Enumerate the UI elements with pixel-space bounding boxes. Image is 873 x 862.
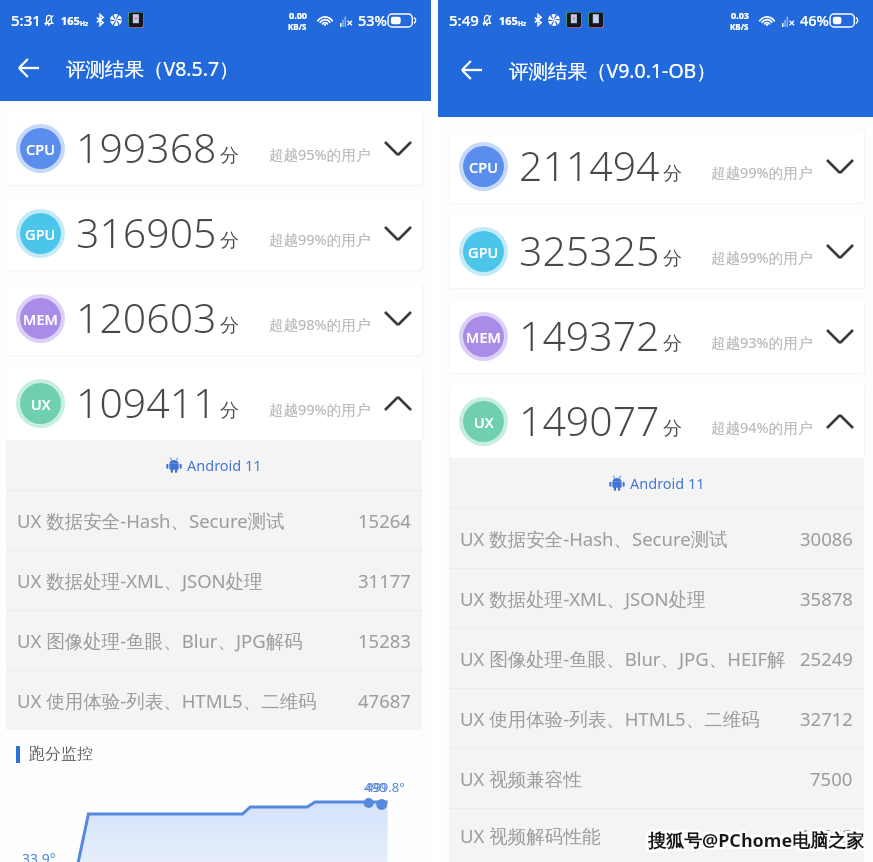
button[interactable]: UX 视频解码性能 [449, 809, 864, 862]
staticText: UX 图像处理-鱼眼、Blur、JPG解码 [17, 628, 303, 653]
staticText: 149372 [519, 307, 660, 363]
staticText: UX 数据安全-Hash、Secure测试 [17, 508, 285, 533]
button[interactable]: GPU [449, 215, 864, 288]
staticText: 17653 [800, 823, 853, 848]
staticText: Android 11 [187, 455, 262, 475]
button[interactable]: Back [8, 48, 48, 88]
staticText: 15264 [358, 508, 411, 533]
staticText: 超越99%的用户 [711, 162, 813, 182]
staticText: 搜狐号@PChome电脑之家 [646, 827, 863, 852]
staticText: 分 [220, 399, 239, 423]
staticText: UX 数据处理-XML、JSON处理 [460, 586, 706, 611]
staticText: UX [474, 412, 494, 432]
staticText: 30086 [800, 526, 853, 551]
staticText: CPU [26, 139, 56, 159]
staticText: 搜狐号@PChome电脑之家 [650, 828, 867, 853]
staticText: 搜狐号@PChome电脑之家 [648, 828, 865, 853]
staticText: 超越95%的用户 [269, 144, 371, 164]
staticText: UX 使用体验-列表、HTML5、二维码 [17, 688, 317, 713]
staticText: GPU [468, 242, 499, 262]
staticText: 评测结果（V9.0.1-OB） [509, 57, 716, 84]
staticText: 149077 [519, 392, 660, 448]
staticText: GPU [25, 224, 56, 244]
staticText: UX 使用体验-列表、HTML5、二维码 [460, 706, 760, 731]
staticText: 超越98%的用户 [269, 314, 371, 334]
staticText: CPU [469, 157, 499, 177]
staticText: 490 [364, 778, 387, 796]
staticText: Hz [80, 19, 89, 28]
staticText: UX 视频解码性能 [460, 823, 601, 848]
staticText: 搜狐号@PChome电脑之家 [650, 827, 867, 852]
button[interactable]: MEM [449, 300, 864, 373]
button[interactable]: UX 使用体验-列表、HTML5、二维码 [6, 671, 422, 730]
button[interactable]: UX [6, 367, 422, 440]
staticText: 分 [220, 229, 239, 253]
staticText: 32712 [800, 706, 853, 731]
staticText: 搜狐号@PChome电脑之家 [650, 830, 867, 855]
staticText: 0.00 [289, 9, 307, 21]
staticText: 搜狐号@PChome电脑之家 [649, 829, 866, 854]
staticText: 搜狐号@PChome电脑之家 [646, 829, 863, 854]
staticText: UX 数据安全-Hash、Secure测试 [460, 526, 728, 551]
staticText: 搜狐号@PChome电脑之家 [647, 828, 864, 853]
staticText: 分 [663, 247, 682, 271]
staticText: MEM [466, 327, 501, 347]
staticText: 分 [220, 144, 239, 168]
staticText: 搜狐号@PChome电脑之家 [647, 829, 864, 854]
staticText: MEM [23, 309, 58, 329]
staticText: 搜狐号@PChome电脑之家 [647, 830, 864, 855]
staticText: 499.8° [366, 778, 405, 796]
staticText: 搜狐号@PChome电脑之家 [648, 829, 865, 854]
staticText: 搜狐号@PChome电脑之家 [649, 827, 866, 852]
staticText: 搜狐号@PChome电脑之家 [646, 830, 863, 855]
staticText: 分 [220, 314, 239, 338]
staticText: 超越94%的用户 [711, 417, 813, 437]
button[interactable]: UX 数据安全-Hash、Secure测试 [449, 509, 864, 568]
button[interactable]: UX [449, 385, 864, 458]
button[interactable]: UX 数据安全-Hash、Secure测试 [6, 491, 422, 550]
staticText: 0.03 [731, 9, 749, 21]
button[interactable]: GPU [6, 197, 422, 270]
button[interactable]: CPU [6, 112, 422, 185]
staticText: 分 [663, 332, 682, 356]
staticText: 47687 [358, 688, 411, 713]
button[interactable]: CPU [449, 130, 864, 203]
button[interactable]: MEM [6, 282, 422, 355]
staticText: KB/S [288, 21, 307, 32]
staticText: 分 [663, 417, 682, 441]
button[interactable]: UX 视频兼容性 [449, 749, 864, 808]
staticText: 搜狐号@PChome电脑之家 [650, 829, 867, 854]
staticText: 超越99%的用户 [269, 399, 371, 419]
staticText: 超越99%的用户 [711, 247, 813, 267]
staticText: UX 视频兼容性 [460, 766, 582, 791]
staticText: 搜狐号@PChome电脑之家 [650, 826, 867, 851]
button[interactable]: UX 图像处理-鱼眼、Blur、JPG、HEIF解 [449, 629, 864, 688]
staticText: 120603 [76, 289, 217, 345]
button[interactable]: UX 数据处理-XML、JSON处理 [449, 569, 864, 628]
staticText: 搜狐号@PChome电脑之家 [647, 826, 864, 851]
staticText: 316905 [76, 204, 217, 260]
button[interactable]: UX 使用体验-列表、HTML5、二维码 [449, 689, 864, 748]
staticText: 超越93%的用户 [711, 332, 813, 352]
staticText: 109411 [76, 374, 217, 430]
staticText: 33.9° [22, 849, 56, 862]
staticText: 15283 [358, 628, 411, 653]
staticText: 199368 [76, 119, 217, 175]
staticText: 5:31 [11, 10, 41, 30]
staticText: 搜狐号@PChome电脑之家 [648, 827, 865, 852]
staticText: 搜狐号@PChome电脑之家 [648, 830, 865, 855]
staticText: 搜狐号@PChome电脑之家 [649, 826, 866, 851]
staticText: 超越99%的用户 [269, 229, 371, 249]
staticText: 搜狐号@PChome电脑之家 [646, 828, 863, 853]
staticText: 搜狐号@PChome电脑之家 [649, 828, 866, 853]
button[interactable]: UX 图像处理-鱼眼、Blur、JPG解码 [6, 611, 422, 670]
staticText: 35878 [800, 586, 853, 611]
staticText: 165 [61, 13, 80, 28]
button[interactable]: Back [451, 50, 491, 90]
staticText: 325325 [519, 222, 660, 278]
staticText: 7500 [810, 766, 853, 791]
button[interactable]: UX 数据处理-XML、JSON处理 [6, 551, 422, 610]
staticText: KB/S [730, 21, 749, 32]
staticText: 搜狐号@PChome电脑之家 [648, 826, 865, 851]
staticText: 46% [800, 10, 829, 30]
